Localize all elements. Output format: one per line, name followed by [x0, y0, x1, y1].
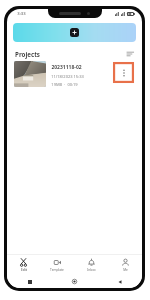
- staticText: Me: [123, 268, 128, 272]
- staticText: 3:33: [17, 11, 26, 17]
- button[interactable]: Me: [108, 255, 142, 275]
- staticText: 11/18/2023 15:33: [51, 74, 84, 79]
- button[interactable]: New project: [70, 28, 79, 37]
- button[interactable]: New project: [13, 23, 136, 42]
- button[interactable]: Inbox: [74, 255, 108, 275]
- staticText: Edit: [21, 268, 27, 272]
- button[interactable]: Edit: [7, 255, 40, 275]
- button[interactable]: More options: [118, 67, 130, 79]
- staticText: 19MB · 00:19: [51, 82, 78, 87]
- staticText: Template: [50, 268, 64, 272]
- button[interactable]: Sort: [125, 49, 135, 59]
- button[interactable]: 20231118-02: [14, 61, 135, 87]
- staticText: Projects: [15, 50, 40, 58]
- button[interactable]: Template: [40, 255, 74, 275]
- button[interactable]: Back: [97, 275, 142, 288]
- staticText: Inbox: [87, 268, 96, 272]
- button[interactable]: Home: [52, 275, 97, 288]
- button[interactable]: Recents: [7, 275, 52, 288]
- staticText: 20231118-02: [51, 64, 82, 71]
